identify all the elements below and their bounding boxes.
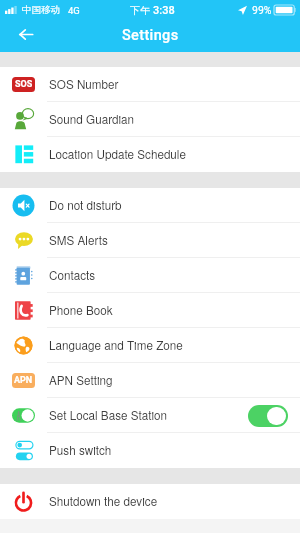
staticText: 99%	[252, 4, 272, 16]
staticText: Shutdown the device	[49, 493, 288, 510]
staticText: SOS	[15, 79, 33, 90]
staticText: SOS Number	[49, 76, 288, 93]
staticText: SMS Alerts	[49, 232, 288, 249]
staticText: Language and Time Zone	[49, 337, 288, 354]
button[interactable]: Shutdown the device	[0, 484, 300, 519]
button[interactable]: SOS	[0, 67, 300, 102]
button[interactable]: SMS Alerts	[0, 223, 300, 258]
staticText: 3:38	[153, 4, 175, 17]
button[interactable]: Phone Book	[0, 293, 300, 328]
button[interactable]: Contacts	[0, 258, 300, 293]
staticText: APN Setting	[49, 372, 288, 389]
button[interactable]: Sound Guardian	[0, 102, 300, 137]
staticText: 中国移动	[22, 4, 60, 16]
staticText: APN	[14, 375, 33, 386]
staticText: Contacts	[49, 267, 288, 284]
staticText: Set Local Base Station	[49, 407, 248, 424]
staticText: Settings	[122, 27, 179, 44]
staticText: Sound Guardian	[49, 111, 288, 128]
button[interactable]: Location Update Schedule	[0, 137, 300, 172]
staticText: 4G	[68, 5, 80, 16]
button[interactable]: Language and Time Zone	[0, 328, 300, 363]
button[interactable]: Back	[11, 23, 41, 49]
button[interactable]: Push switch	[0, 433, 300, 468]
staticText: Push switch	[49, 442, 288, 459]
button[interactable]: Set Local Base Station	[0, 398, 300, 433]
staticText: 下午	[130, 4, 150, 17]
staticText: Location Update Schedule	[49, 146, 288, 163]
staticText: Phone Book	[49, 302, 288, 319]
button[interactable]: APN	[0, 363, 300, 398]
button[interactable]: Do not disturb	[0, 188, 300, 223]
button[interactable]: Toggle Set Local Base Station	[248, 405, 288, 427]
staticText: Do not disturb	[49, 197, 288, 214]
